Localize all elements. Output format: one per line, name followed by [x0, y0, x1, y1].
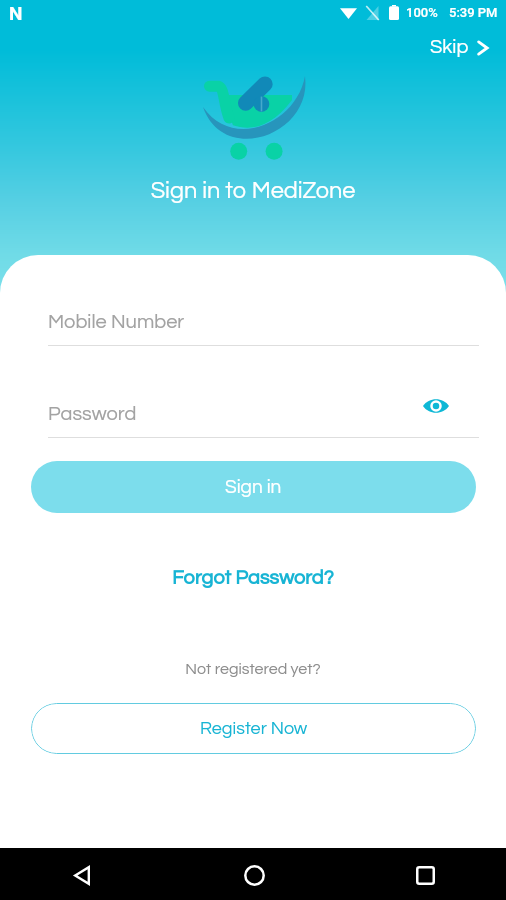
staticText: Password [48, 404, 137, 425]
staticText: Register Now [200, 719, 308, 738]
button[interactable]: Register Now [31, 703, 476, 754]
staticText: Sign in to MediZone [0, 179, 506, 203]
staticText: Skip [430, 37, 469, 58]
button[interactable]: Back [56, 849, 108, 900]
button[interactable]: Show password [419, 389, 453, 423]
staticText: Forgot Password? [172, 568, 334, 589]
staticText: Mobile Number [48, 312, 185, 333]
button[interactable]: Sign in [31, 461, 476, 513]
button[interactable]: Home [228, 849, 280, 900]
staticText: Not registered yet? [0, 661, 506, 677]
button[interactable]: Password [48, 388, 479, 438]
staticText: 5:39 PM [449, 5, 498, 20]
button[interactable]: Recents [399, 849, 451, 900]
button[interactable]: Skip [421, 33, 497, 62]
staticText: 100% [406, 5, 438, 20]
button[interactable]: Mobile Number [48, 296, 479, 346]
staticText: N [9, 2, 23, 24]
staticText: Sign in [225, 477, 282, 497]
button[interactable]: Forgot Password? [160, 562, 346, 595]
